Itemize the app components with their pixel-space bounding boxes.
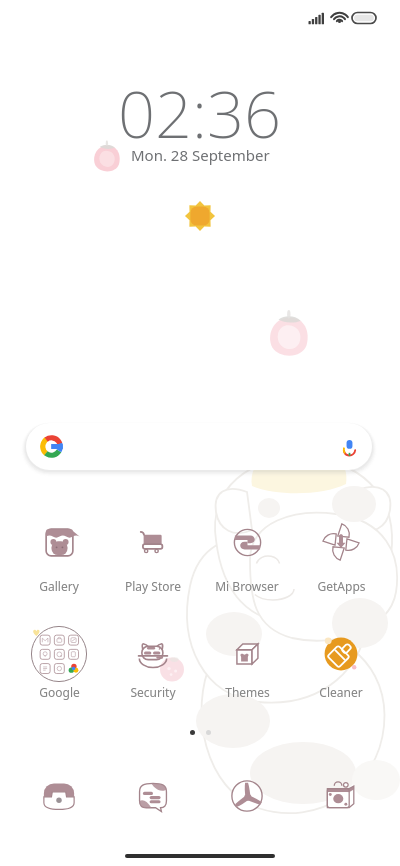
button[interactable]: Camera <box>294 772 388 820</box>
button[interactable]: Phone <box>12 772 106 820</box>
button[interactable]: Google Search <box>26 423 372 470</box>
staticText: Cleaner <box>319 684 363 700</box>
staticText: Google <box>39 684 80 700</box>
button[interactable]: GetApps <box>294 512 388 594</box>
staticText: Mon. 28 September <box>131 145 270 165</box>
button[interactable]: Gallery <box>12 512 106 594</box>
button[interactable]: Play Store <box>106 512 200 594</box>
button[interactable]: Themes <box>200 624 294 700</box>
button[interactable]: Mi Browser <box>200 512 294 594</box>
button[interactable]: Messages <box>106 772 200 820</box>
staticText: Play Store <box>125 578 181 594</box>
button[interactable]: Voice search <box>336 434 362 460</box>
button[interactable]: Security <box>106 624 200 700</box>
staticText: Gallery <box>39 578 79 594</box>
button[interactable]: Cleaner <box>294 624 388 700</box>
staticText: 02:36 <box>118 69 282 158</box>
button[interactable]: Browser <box>200 772 294 820</box>
staticText: Themes <box>225 684 270 700</box>
button[interactable]: Google <box>12 624 106 700</box>
staticText: Security <box>130 684 176 700</box>
staticText: Mi Browser <box>215 578 279 594</box>
staticText: GetApps <box>317 578 366 594</box>
